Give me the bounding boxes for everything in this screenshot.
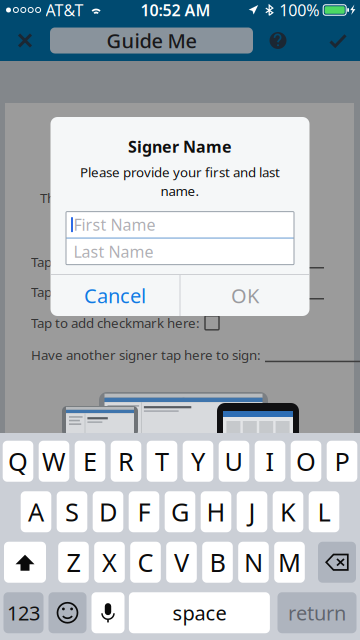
button[interactable]: E: [75, 441, 105, 482]
button[interactable]: K: [273, 491, 303, 532]
button[interactable]: Q: [3, 441, 33, 482]
button[interactable]: Y: [183, 441, 213, 482]
button[interactable]: H: [201, 491, 231, 532]
staticText: J: [248, 495, 255, 528]
staticText: Guide Me: [106, 27, 196, 54]
staticText: S: [65, 495, 79, 528]
staticText: 100%: [279, 0, 319, 21]
staticText: Have another signer tap here to sign:: [31, 346, 261, 364]
button[interactable]: R: [111, 441, 141, 482]
button[interactable]: Dictation: [91, 592, 124, 633]
staticText: Y: [191, 444, 205, 478]
button[interactable]: W: [39, 441, 69, 482]
button[interactable]: Done: [316, 20, 360, 61]
button[interactable]: D: [93, 491, 123, 532]
staticText: O: [296, 444, 316, 478]
staticText: Last Name: [73, 241, 153, 262]
staticText: V: [174, 545, 189, 579]
button[interactable]: V: [166, 542, 197, 583]
button[interactable]: Help: [253, 20, 303, 61]
staticText: W: [42, 444, 66, 478]
staticText: Z: [66, 545, 80, 579]
button[interactable]: Guide Me: [50, 27, 253, 53]
button[interactable]: L: [309, 491, 339, 532]
staticText: AT&T: [46, 0, 84, 21]
button[interactable]: space: [129, 592, 270, 633]
button[interactable]: A: [21, 491, 51, 532]
staticText: Signer Name: [128, 136, 232, 157]
staticText: Cancel: [84, 282, 146, 309]
staticText: space: [172, 599, 226, 626]
staticText: U: [224, 444, 243, 478]
button[interactable]: Shift: [4, 542, 46, 583]
staticText: 10:52 AM: [140, 0, 210, 21]
button[interactable]: G: [165, 491, 195, 532]
button[interactable]: J: [237, 491, 267, 532]
staticText: M: [278, 545, 301, 579]
button[interactable]: N: [238, 542, 269, 583]
staticText: G: [171, 495, 189, 528]
staticText: B: [209, 545, 225, 579]
button[interactable]: Close: [0, 20, 50, 61]
button[interactable]: X: [94, 542, 125, 583]
staticText: P: [334, 444, 349, 478]
staticText: Q: [8, 444, 28, 478]
button[interactable]: T: [147, 441, 177, 482]
staticText: This is a document you may sign up.: [40, 189, 258, 207]
button[interactable]: Delete: [318, 542, 356, 583]
staticText: R: [118, 444, 134, 478]
staticText: OK: [231, 282, 259, 309]
staticText: L: [317, 495, 330, 528]
staticText: Please provide your first and last: [80, 163, 280, 181]
button[interactable]: 123: [3, 592, 43, 633]
button[interactable]: Cancel: [51, 275, 180, 316]
staticText: First Name: [73, 214, 155, 235]
button[interactable]: S: [57, 491, 87, 532]
staticText: Tap: [31, 253, 52, 271]
staticText: K: [280, 495, 296, 528]
button[interactable]: B: [202, 542, 233, 583]
staticText: Tap: [31, 283, 52, 301]
staticText: N: [244, 545, 263, 579]
staticText: C: [137, 545, 153, 579]
staticText: F: [137, 495, 150, 528]
button[interactable]: U: [219, 441, 249, 482]
staticText: A: [28, 495, 44, 528]
button[interactable]: M: [274, 542, 305, 583]
button[interactable]: Z: [58, 542, 89, 583]
staticText: name.: [160, 182, 199, 200]
staticText: T: [155, 444, 169, 478]
staticText: H: [206, 495, 225, 528]
button[interactable]: return: [277, 592, 356, 633]
staticText: D: [99, 495, 117, 528]
button[interactable]: OK: [180, 275, 309, 316]
button[interactable]: F: [129, 491, 159, 532]
staticText: Tap to add checkmark here:: [31, 314, 200, 332]
button[interactable]: C: [130, 542, 161, 583]
button[interactable]: P: [327, 441, 357, 482]
button[interactable]: Emoji: [48, 592, 86, 633]
button[interactable]: O: [291, 441, 321, 482]
staticText: return: [288, 599, 346, 626]
button[interactable]: I: [255, 441, 285, 482]
staticText: I: [265, 444, 274, 478]
staticText: X: [102, 545, 117, 579]
staticText: E: [83, 444, 97, 478]
staticText: 123: [7, 599, 40, 626]
